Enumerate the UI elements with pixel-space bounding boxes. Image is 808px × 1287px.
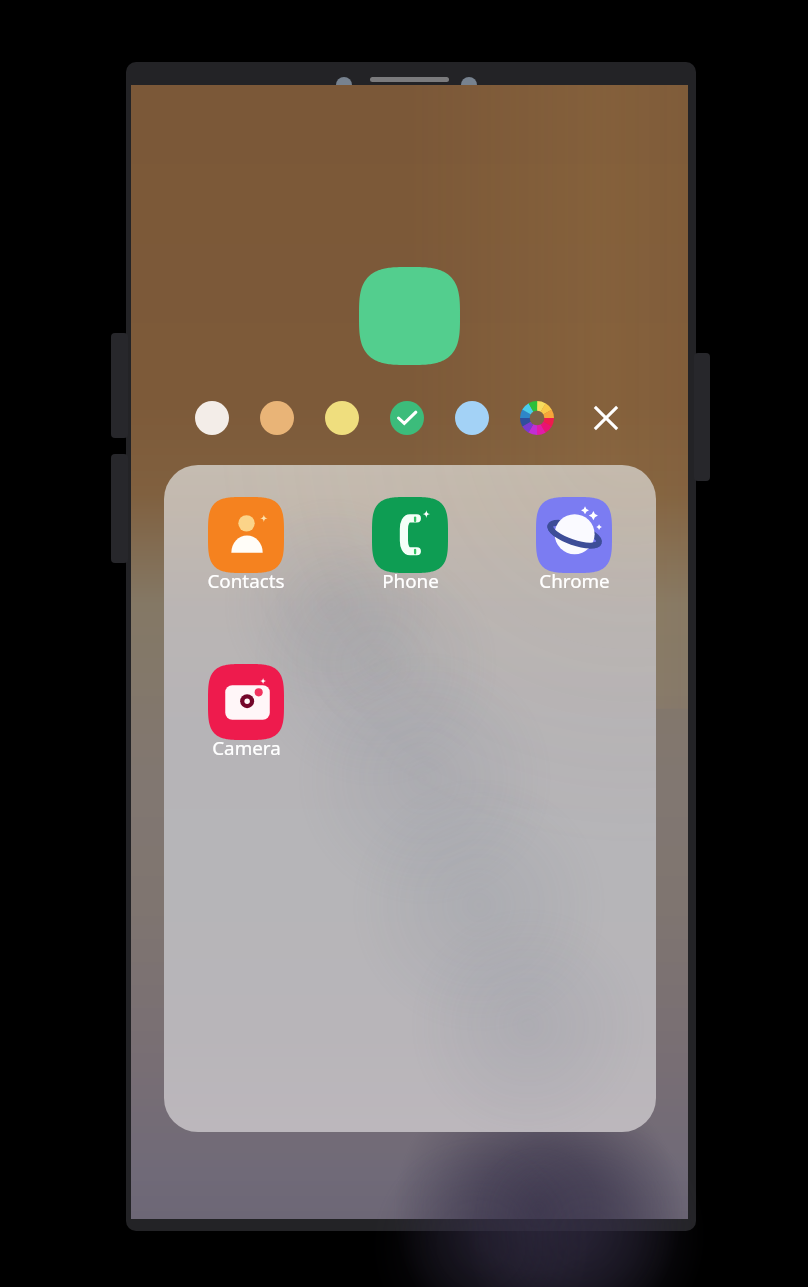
button[interactable]: Phone [328,465,492,621]
button[interactable]: Custom colour [520,401,554,435]
button[interactable]: Orange [260,401,294,435]
button[interactable]: Camera [164,621,328,788]
button[interactable]: Chrome [492,465,656,621]
button[interactable]: Yellow [325,401,359,435]
button[interactable]: Contacts [164,465,328,621]
staticText: Contacts [207,568,285,594]
staticText: Phone [382,568,439,594]
staticText: Camera [212,735,281,761]
button[interactable]: Blue [455,401,489,435]
button[interactable]: White [195,401,229,435]
button[interactable]: Close [588,400,624,436]
button[interactable]: Green, selected [390,401,424,435]
staticText: Chrome [539,568,610,594]
